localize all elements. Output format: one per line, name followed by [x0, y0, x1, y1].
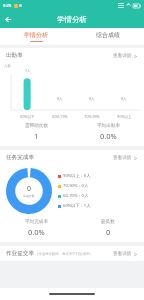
staticText: 人数: [4, 64, 12, 69]
staticText: 1: [34, 131, 39, 141]
staticText: 9:25: [3, 3, 12, 9]
staticText: 0: [27, 184, 32, 194]
staticText: 60-70%：0人: [63, 193, 89, 199]
staticText: 平均出勤率: [97, 123, 120, 129]
staticText: 0人: [121, 96, 127, 101]
staticText: 查看详情: [113, 53, 132, 59]
staticText: 完成次数: [23, 194, 35, 198]
staticText: 60%-70%: [52, 114, 68, 119]
staticText: 60%以下：1人: [63, 203, 91, 209]
button[interactable]: 查看详情: [112, 249, 138, 259]
staticText: 0.0%: [100, 131, 117, 141]
button[interactable]: Back: [0, 11, 17, 28]
staticText: 获奖数: [101, 219, 115, 225]
staticText: 70%-90%: [84, 114, 100, 119]
staticText: 90%以上：0人: [63, 173, 91, 179]
staticText: 查看详情: [113, 251, 132, 257]
staticText: 查看详情: [113, 155, 132, 161]
staticText: 任务完成率: [6, 154, 34, 161]
staticText: 0人: [57, 96, 63, 101]
staticText: 综合成绩: [96, 31, 120, 39]
staticText: 0.0%: [28, 227, 45, 237]
button[interactable]: 查看详情: [112, 153, 138, 163]
staticText: 0人: [89, 96, 95, 101]
staticText: 学情分析: [57, 15, 87, 24]
staticText: 0: [106, 227, 111, 237]
staticText: 平均完成率: [25, 219, 48, 225]
button[interactable]: 查看详情: [112, 51, 138, 61]
staticText: 需帮助次数: [25, 123, 48, 129]
button[interactable]: 学情分析: [0, 28, 72, 45]
staticText: 1人: [25, 68, 31, 73]
staticText: 学情分析: [24, 31, 48, 39]
staticText: 作业提交率: [6, 250, 34, 257]
staticText: （作业统计数据，每天早于12点更新）: [35, 251, 94, 256]
staticText: 60%以下: [20, 114, 35, 119]
staticText: 出勤率: [6, 52, 23, 59]
button[interactable]: 综合成绩: [72, 28, 144, 45]
staticText: 70-90%：0人: [63, 183, 89, 189]
staticText: 90%以上: [117, 114, 132, 119]
